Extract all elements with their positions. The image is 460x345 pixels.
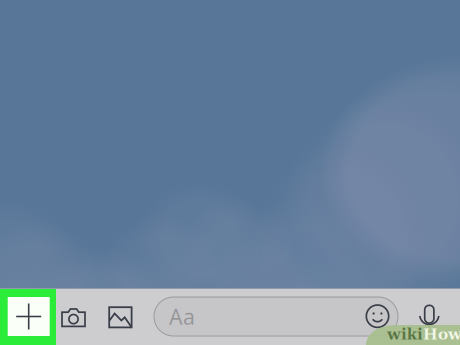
staticText: wiki	[387, 325, 423, 345]
button[interactable]: Add	[0, 288, 56, 345]
button[interactable]: Emoji	[359, 298, 395, 334]
button[interactable]: Aa	[154, 297, 398, 336]
staticText: Aa	[169, 302, 195, 331]
button[interactable]: Photos	[98, 289, 142, 345]
button[interactable]: Camera	[51, 289, 95, 345]
staticText: How	[423, 325, 460, 345]
button[interactable]: Voice message	[411, 296, 447, 336]
